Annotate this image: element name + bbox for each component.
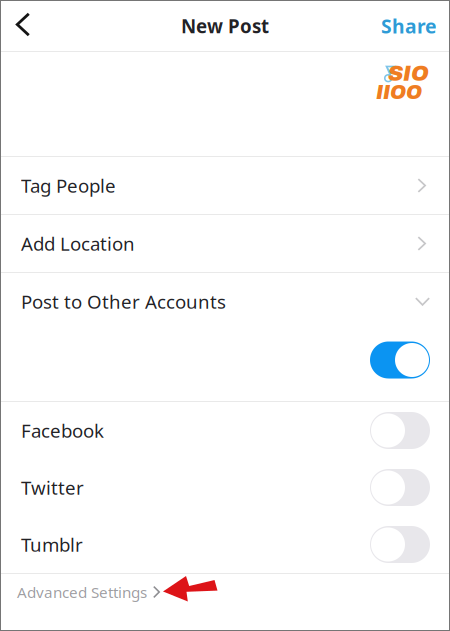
staticText: Advanced Settings [17, 582, 147, 602]
button[interactable]: Add Location [0, 215, 450, 272]
button[interactable]: Back [0, 1, 46, 51]
staticText: Share [381, 13, 437, 39]
staticText: IIOO [376, 82, 422, 103]
button[interactable]: Post to other accounts [370, 330, 430, 400]
staticText: Tumblr [21, 532, 83, 557]
button[interactable]: Facebook [0, 402, 450, 459]
staticText: Add Location [21, 231, 135, 256]
button[interactable]: Advanced Settings [0, 574, 162, 610]
staticText: Facebook [21, 418, 104, 443]
button[interactable]: Twitter [0, 459, 450, 516]
button[interactable]: Share [368, 3, 450, 49]
button[interactable]: Tag People [0, 157, 450, 214]
staticText: Post to Other Accounts [21, 289, 226, 314]
staticText: Tag People [21, 173, 116, 198]
staticText: Twitter [21, 475, 84, 500]
button[interactable]: Post to Other Accounts [0, 273, 450, 330]
staticText: SIO [388, 62, 429, 85]
button[interactable]: Tumblr [0, 516, 450, 573]
staticText: New Post [181, 13, 269, 39]
